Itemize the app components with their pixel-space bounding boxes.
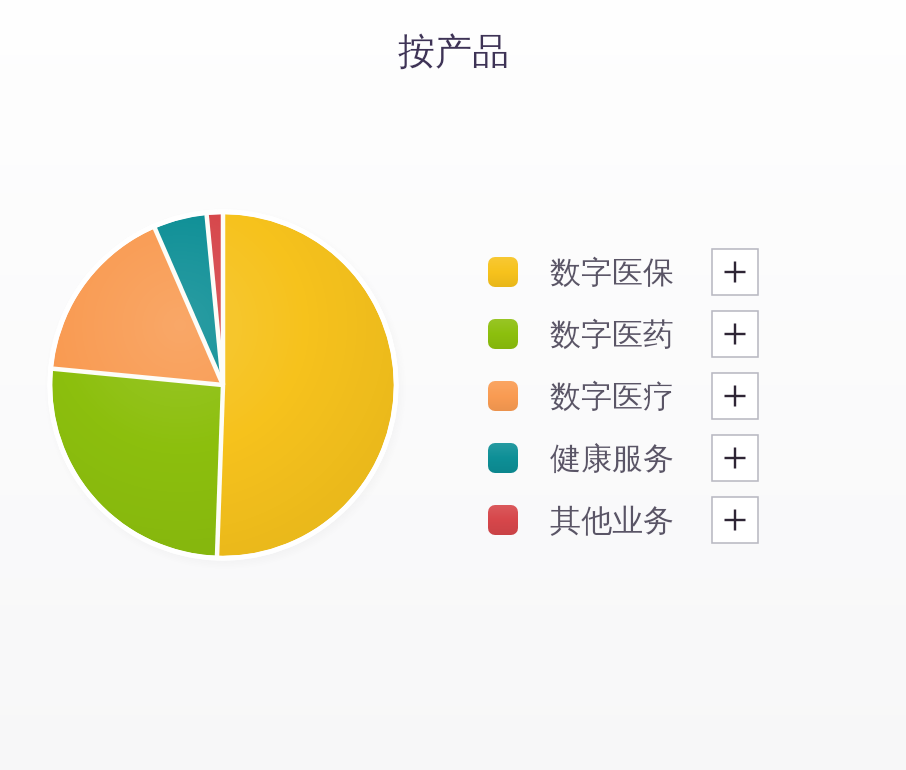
staticText: 其他业务 (550, 501, 674, 540)
button[interactable]: 展开 其他业务 (712, 497, 758, 543)
button[interactable]: 展开 数字医药 (712, 311, 758, 357)
button[interactable]: 其他业务 (488, 489, 758, 551)
button[interactable]: 展开 健康服务 (712, 435, 758, 481)
button[interactable]: 数字医药 (488, 303, 758, 365)
staticText: 数字医药 (550, 315, 674, 354)
button[interactable]: 数字医疗 (488, 365, 758, 427)
button[interactable]: 展开 数字医保 (712, 249, 758, 295)
staticText: 健康服务 (550, 439, 674, 478)
staticText: 按产品 (398, 28, 509, 75)
staticText: 数字医疗 (550, 377, 674, 416)
button[interactable]: 展开 数字医疗 (712, 373, 758, 419)
staticText: 数字医保 (550, 253, 674, 292)
button[interactable]: 数字医保 (488, 241, 758, 303)
button[interactable]: 健康服务 (488, 427, 758, 489)
